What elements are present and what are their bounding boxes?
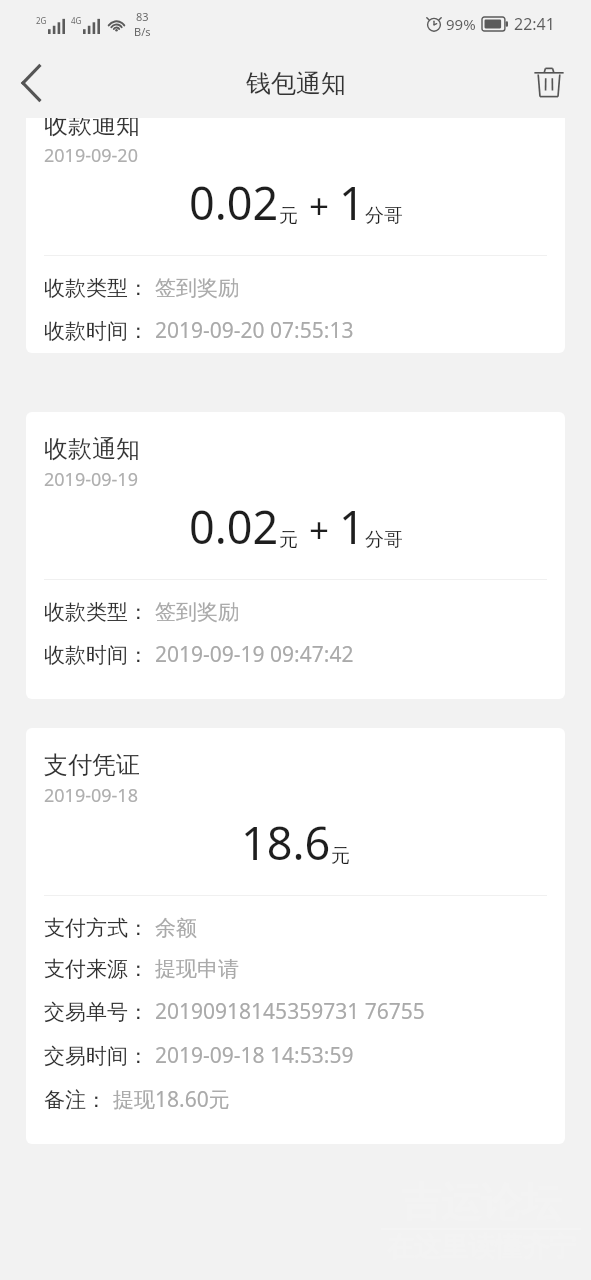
staticText: 元 <box>279 528 298 552</box>
staticText: B/s <box>134 24 151 39</box>
staticText: 提现18.60元 <box>113 1085 230 1114</box>
button[interactable]: 收款通知 <box>26 412 565 699</box>
staticText: 99% <box>446 14 476 34</box>
staticText: 收款类型： <box>44 599 149 625</box>
staticText: 20190918145359731 76755 <box>155 997 425 1026</box>
staticText: 收款时间： <box>44 318 149 344</box>
button[interactable]: Back <box>0 52 62 114</box>
staticText: 2019-09-20 <box>44 143 138 168</box>
staticText: 签到奖励 <box>155 275 239 301</box>
button[interactable]: 收款通知 <box>26 118 565 353</box>
staticText: 收款时间： <box>44 642 149 668</box>
staticText: 2G <box>36 15 47 26</box>
staticText: 支付方式： <box>44 915 149 941</box>
staticText: 1 <box>339 172 365 233</box>
staticText: + <box>309 182 330 230</box>
staticText: 18.6 <box>241 812 331 873</box>
staticText: 提现申请 <box>155 956 239 982</box>
staticText: 收款通知 <box>44 434 140 464</box>
staticText: 2019-09-19 09:47:42 <box>155 640 354 669</box>
staticText: 2019-09-18 14:53:59 <box>155 1041 354 1070</box>
staticText: 1 <box>339 496 365 557</box>
staticText: 钱包通知 <box>246 68 346 99</box>
staticText: 分哥 <box>365 204 403 228</box>
staticText: 交易时间： <box>44 1043 149 1069</box>
staticText: 22:41 <box>514 13 555 35</box>
staticText: 支付来源： <box>44 956 149 982</box>
staticText: 备注： <box>44 1087 107 1113</box>
button[interactable]: Delete all <box>519 53 579 113</box>
staticText: 元 <box>331 844 350 868</box>
staticText: 分哥 <box>365 528 403 552</box>
staticText: + <box>309 506 330 554</box>
staticText: 2019-09-18 <box>44 783 138 808</box>
staticText: 2019-09-19 <box>44 467 138 492</box>
staticText: 余额 <box>155 915 197 941</box>
staticText: 元 <box>279 204 298 228</box>
staticText: 4G <box>71 15 82 26</box>
staticText: 0.02 <box>189 172 279 233</box>
staticText: 支付凭证 <box>44 750 140 780</box>
staticText: 收款类型： <box>44 275 149 301</box>
staticText: 交易单号： <box>44 999 149 1025</box>
staticText: 签到奖励 <box>155 599 239 625</box>
staticText: 0.02 <box>189 496 279 557</box>
staticText: 83 <box>136 9 149 24</box>
staticText: 2019-09-20 07:55:13 <box>155 316 354 345</box>
staticText: 收款通知 <box>44 118 140 140</box>
button[interactable]: 支付凭证 <box>26 728 565 1144</box>
